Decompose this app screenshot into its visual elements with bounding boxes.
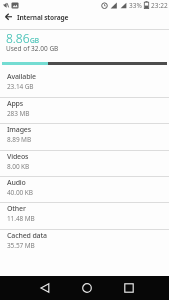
staticText: Images — [7, 125, 31, 135]
button[interactable]: Internal storage — [0, 10, 169, 24]
button[interactable]: 8.86 — [0, 30, 169, 71]
staticText: 8.00 KB — [7, 162, 30, 171]
button[interactable]: Videos — [0, 151, 169, 177]
button[interactable]: Available — [0, 71, 169, 98]
staticText: GB — [30, 36, 39, 45]
staticText: Internal storage — [17, 13, 69, 22]
button[interactable]: Apps — [0, 98, 169, 124]
staticText: Other — [7, 204, 26, 214]
button[interactable] — [120, 279, 138, 297]
staticText: Cached data — [7, 231, 47, 241]
staticText: 8.86 — [6, 30, 30, 46]
staticText: 8.89 MB — [7, 135, 32, 144]
button[interactable]: Audio — [0, 177, 169, 203]
staticText: 33% — [129, 1, 142, 10]
staticText: 40.00 KB — [7, 188, 33, 197]
button[interactable] — [78, 279, 96, 297]
button[interactable] — [5, 13, 13, 21]
staticText: 11.48 MB — [7, 214, 35, 223]
staticText: Audio — [7, 178, 26, 188]
staticText: Used of 32.00 GB — [6, 44, 59, 53]
staticText: 283 MB — [7, 109, 30, 118]
button[interactable]: Images — [0, 124, 169, 151]
button[interactable]: Other — [0, 203, 169, 230]
staticText: 23.14 GB — [7, 82, 34, 91]
staticText: 23:22 — [151, 1, 168, 10]
button[interactable] — [36, 279, 54, 297]
button[interactable]: Cached data — [0, 230, 169, 256]
staticText: Available — [7, 72, 36, 82]
staticText: Videos — [7, 152, 29, 162]
staticText: 35.57 MB — [7, 241, 35, 250]
staticText: Apps — [7, 99, 24, 109]
